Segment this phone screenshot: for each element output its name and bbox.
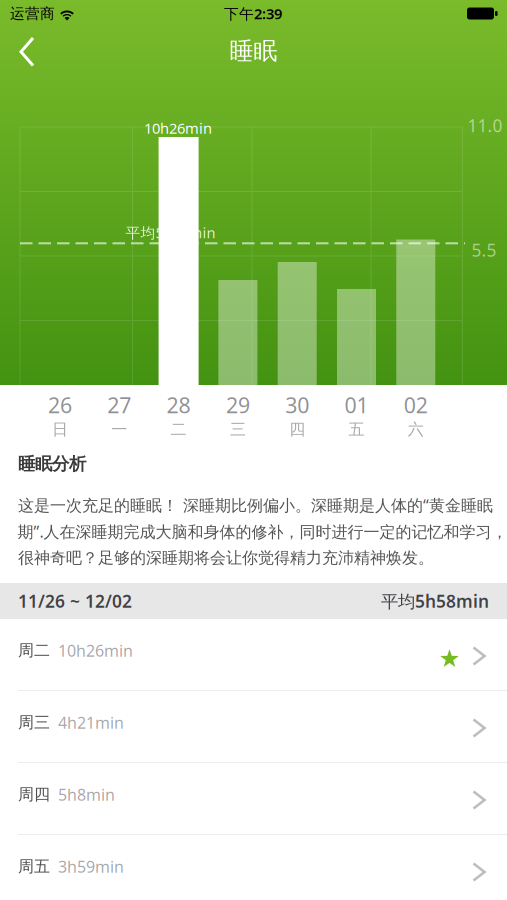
staticText: 周五 — [18, 857, 50, 876]
staticText: 5.5 — [471, 238, 496, 261]
staticText: 这是一次充足的睡眠！ 深睡期比例偏小。深睡期是人体的“黄金睡眠 — [18, 494, 493, 516]
staticText: 30 — [285, 391, 309, 419]
staticText: 3h59min — [58, 856, 124, 877]
staticText: 睡眠分析 — [18, 453, 86, 475]
staticText: 周二 — [18, 641, 50, 660]
staticText: 日 — [52, 420, 68, 439]
staticText: 10h26min — [144, 118, 212, 138]
staticText: 睡眠 — [229, 36, 277, 66]
staticText: 二 — [171, 420, 187, 439]
staticText: 11.0 — [467, 114, 502, 137]
staticText: 四 — [289, 420, 305, 439]
button[interactable]: 周五 — [0, 835, 507, 900]
staticText: 期”.人在深睡期完成大脑和身体的修补，同时进行一定的记忆和学习， — [17, 521, 507, 542]
staticText: 一 — [111, 420, 127, 439]
staticText: 周三 — [18, 713, 50, 732]
staticText: 周四 — [18, 785, 50, 804]
staticText: 29 — [226, 391, 250, 419]
button[interactable]: 周二 — [0, 619, 507, 691]
staticText: 平均5h58min — [381, 589, 489, 612]
staticText: 4h21min — [58, 712, 124, 733]
staticText: 27 — [107, 391, 131, 419]
button[interactable]: 周三 — [0, 691, 507, 763]
staticText: 01 — [344, 391, 368, 419]
staticText: 5h8min — [58, 784, 115, 805]
staticText: 02 — [404, 391, 428, 419]
staticText: 28 — [167, 391, 191, 419]
staticText: 六 — [408, 420, 424, 439]
staticText: 平均5h58min — [125, 223, 215, 242]
staticText: 11/26 ~ 12/02 — [18, 589, 132, 612]
staticText: 很神奇吧？足够的深睡期将会让你觉得精力充沛精神焕发。 — [18, 548, 434, 568]
staticText: 运营商 — [10, 4, 55, 22]
staticText: 26 — [48, 391, 72, 419]
staticText: 五 — [348, 420, 364, 439]
button[interactable]: Back — [4, 30, 48, 74]
staticText: 10h26min — [58, 640, 133, 661]
staticText: 下午2:39 — [224, 4, 282, 23]
staticText: 三 — [230, 420, 246, 439]
button[interactable]: 周四 — [0, 763, 507, 835]
